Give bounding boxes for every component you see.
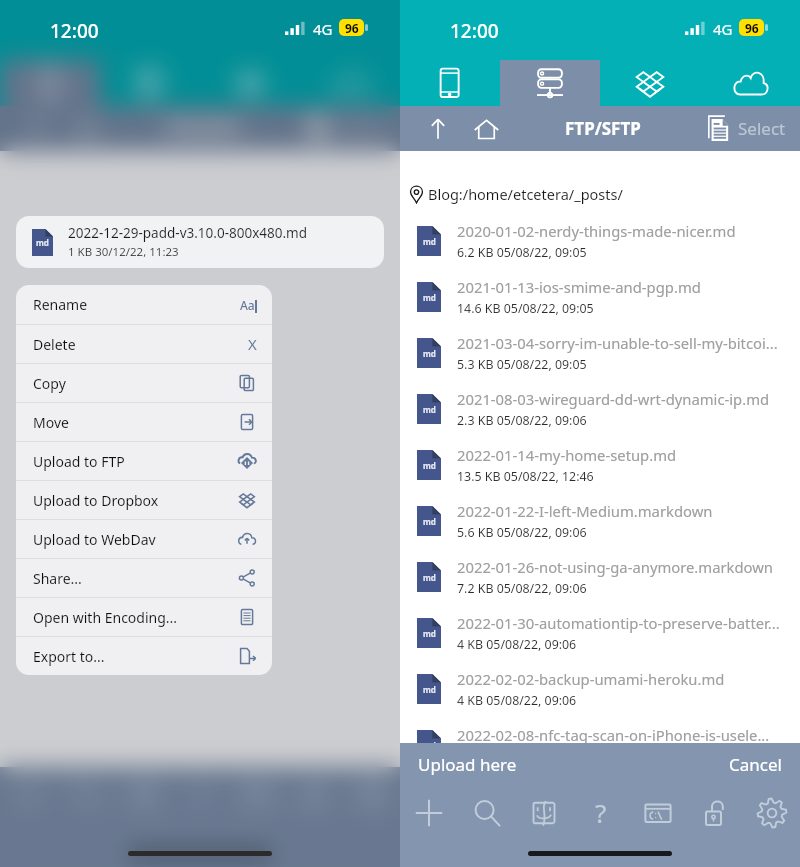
button[interactable]: Finder: [115, 767, 172, 821]
staticText: 2.3 KB 05/08/22, 09:06: [457, 412, 587, 429]
staticText: ?: [595, 795, 607, 830]
button[interactable]: Upload to WebDav: [16, 520, 272, 558]
staticText: 2022-01-14-my-home-setup.md: [457, 445, 677, 465]
staticText: Open with Encoding...: [33, 608, 178, 627]
button[interactable]: md: [400, 717, 800, 773]
button[interactable]: Search: [458, 786, 515, 840]
button[interactable]: md: [400, 549, 800, 605]
staticText: 14.6 KB 05/08/22, 09:05: [457, 300, 594, 317]
button[interactable]: Upload to FTP: [16, 442, 272, 480]
button[interactable]: Copy: [16, 364, 272, 402]
staticText: Export to...: [33, 647, 105, 666]
staticText: md: [423, 516, 436, 527]
staticText: X: [248, 334, 257, 354]
button[interactable]: md: [400, 437, 800, 493]
button[interactable]: Add: [400, 786, 458, 840]
button[interactable]: Help: [172, 767, 229, 821]
button[interactable]: Select: [702, 115, 792, 142]
staticText: Upload here: [418, 753, 517, 776]
button[interactable]: Finder: [515, 786, 572, 840]
staticText: Upload to FTP: [33, 452, 125, 471]
staticText: md: [423, 628, 436, 639]
button[interactable]: Lock: [686, 786, 743, 840]
button[interactable]: Settings: [343, 767, 400, 821]
staticText: 13.5 KB 05/08/22, 12:46: [457, 468, 594, 485]
button[interactable]: Add: [0, 767, 58, 821]
button[interactable]: Cancel: [711, 746, 800, 783]
staticText: 4 KB 05/08/22, 09:06: [457, 692, 577, 709]
button[interactable]: Share...: [16, 559, 272, 597]
staticText: 1 KB 30/12/22, 11:23: [68, 244, 179, 260]
button[interactable]: Upload to Dropbox: [16, 481, 272, 519]
button[interactable]: md: [400, 213, 800, 269]
staticText: 2021-03-04-sorry-im-unable-to-sell-my-bi…: [457, 333, 778, 353]
staticText: 7.2 KB 05/08/22, 09:06: [457, 580, 587, 597]
staticText: 96: [745, 20, 759, 36]
button[interactable]: FTP servers: [500, 60, 600, 106]
staticText: 12:00: [50, 18, 99, 44]
button[interactable]: Upload here: [400, 746, 535, 783]
button[interactable]: Search: [58, 767, 115, 821]
button[interactable]: Dropbox: [600, 60, 700, 106]
button[interactable]: Terminal: [229, 767, 286, 821]
staticText: 2022-01-30-automationtip-to-preserve-bat…: [457, 613, 780, 633]
button[interactable]: Cloud: [700, 60, 800, 106]
staticText: Delete: [33, 335, 76, 354]
staticText: Cancel: [729, 753, 782, 776]
button[interactable]: Export to...: [16, 637, 272, 675]
staticText: 2021-08-03-wireguard-dd-wrt-dynamic-ip.m…: [457, 389, 770, 409]
button[interactable]: Home: [68, 111, 104, 147]
button[interactable]: md: [400, 605, 800, 661]
button[interactable]: Delete: [16, 325, 272, 363]
staticText: 5.3 KB 05/08/22, 09:05: [457, 356, 587, 373]
button[interactable]: Help: [572, 786, 629, 840]
staticText: 2022-01-22-I-left-Medium.markdown: [457, 501, 713, 521]
staticText: 4 KB 05/08/22, 09:06: [457, 636, 577, 653]
staticText: md: [36, 237, 49, 248]
staticText: 5 KB 05/08/22, 09:06: [457, 748, 577, 765]
staticText: 2022-02-02-backup-umami-heroku.md: [457, 669, 725, 689]
staticText: Upload to WebDav: [33, 530, 156, 549]
staticText: Share...: [33, 569, 82, 588]
button[interactable]: Home: [468, 111, 504, 147]
staticText: Move: [33, 413, 69, 432]
button[interactable]: Cloud: [300, 60, 400, 106]
button[interactable]: Dropbox: [200, 60, 300, 106]
staticText: Copy: [33, 374, 66, 393]
button[interactable]: Rename: [16, 285, 272, 324]
button[interactable]: Terminal: [629, 786, 686, 840]
button[interactable]: md: [400, 269, 800, 325]
button[interactable]: Local files: [400, 60, 500, 106]
button[interactable]: Open with Encoding...: [16, 598, 272, 636]
button[interactable]: md: [16, 216, 384, 268]
staticText: md: [423, 460, 436, 471]
button[interactable]: Move: [16, 403, 272, 441]
button[interactable]: md: [400, 325, 800, 381]
button[interactable]: Up one level: [420, 111, 456, 147]
staticText: Blog:/home/etcetera/_posts/: [428, 184, 623, 204]
staticText: 2022-01-26-not-using-ga-anymore.markdown: [457, 557, 774, 577]
button[interactable]: md: [400, 661, 800, 717]
button[interactable]: Settings: [743, 786, 800, 840]
staticText: 2022-12-29-padd-v3.10.0-800x480.md: [68, 224, 307, 242]
button[interactable]: Lock: [286, 767, 343, 821]
staticText: md: [423, 684, 436, 695]
staticText: 6.2 KB 05/08/22, 09:05: [457, 244, 587, 261]
button[interactable]: Local files: [0, 60, 100, 106]
button[interactable]: md: [400, 381, 800, 437]
staticText: Select: [738, 117, 786, 140]
staticText: md: [423, 404, 436, 415]
staticText: Rename: [33, 295, 88, 314]
staticText: md: [423, 348, 436, 359]
staticText: md: [423, 572, 436, 583]
staticText: 2020-01-02-nerdy-things-made-nicer.md: [457, 221, 736, 241]
staticText: md: [423, 292, 436, 303]
button[interactable]: md: [400, 493, 800, 549]
staticText: md: [423, 740, 436, 751]
button[interactable]: Up one level: [20, 111, 56, 147]
staticText: ?: [195, 776, 207, 811]
staticText: 12:00: [450, 18, 499, 44]
button[interactable]: FTP servers: [100, 60, 200, 106]
button[interactable]: Select: [302, 115, 392, 142]
staticText: 2021-01-13-ios-smime-and-pgp.md: [457, 277, 701, 297]
